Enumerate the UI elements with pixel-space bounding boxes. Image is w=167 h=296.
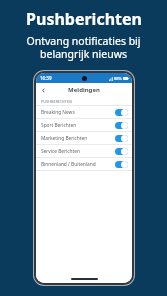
staticText: Ontvang notificaties bij belangrijk nieu… [26,34,141,61]
staticText: Marketing Berichten [41,135,115,142]
button[interactable]: Binnenland / Buitenland [36,158,132,170]
button[interactable]: Sport Berichten [36,119,132,131]
staticText: 88% [114,76,122,81]
button[interactable]: Breaking News [36,106,132,118]
button[interactable]: Service Berichten [36,145,132,157]
staticText: PUSHBERICHTEN [41,99,72,104]
button[interactable]: Marketing Berichten [36,132,132,144]
staticText: Sport Berichten [41,122,115,129]
staticText: Pushberichten [26,8,142,30]
button[interactable]: Terug [38,85,49,96]
staticText: Service Berichten [41,148,115,155]
staticText: 16:39 [40,75,52,81]
staticText: Binnenland / Buitenland [41,161,115,168]
staticText: Meldingen [68,86,100,94]
staticText: Breaking News [41,109,115,116]
